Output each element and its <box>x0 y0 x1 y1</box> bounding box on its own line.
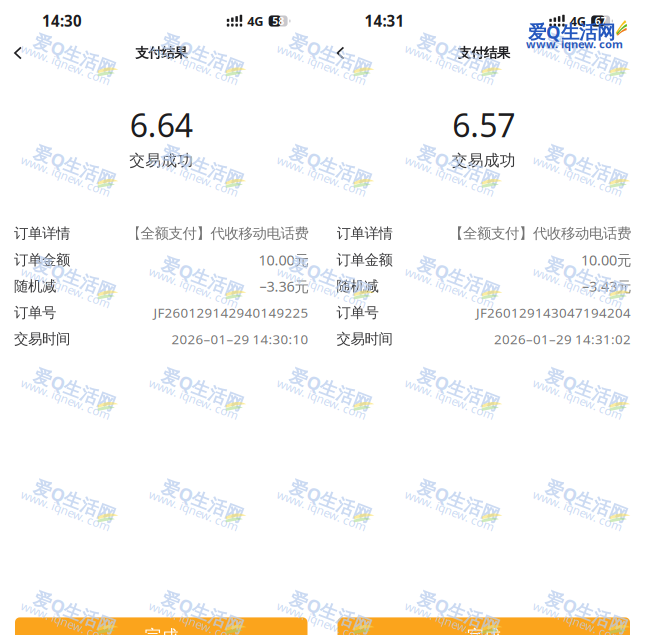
staticText: www. iqnew. com <box>413 602 508 618</box>
staticText: www. iqnew. com <box>413 379 508 395</box>
staticText: 爱Q生活网 <box>551 585 637 610</box>
staticText: 爱Q生活网 <box>423 362 509 387</box>
staticText: 爱Q生活网 <box>295 474 381 498</box>
staticText: 爱Q生活网 <box>423 28 509 52</box>
staticText: 完成 <box>144 625 178 635</box>
staticText: www. iqnew. com <box>285 379 380 395</box>
staticText: www. iqnew. com <box>541 44 636 60</box>
staticText: 【全额支付】代收移动电话费 <box>449 224 631 243</box>
staticText: 爱Q生活网 <box>423 139 509 164</box>
staticText: 支付结果 <box>135 44 187 61</box>
staticText: www. iqnew. com <box>541 156 636 172</box>
staticText: 订单金额 <box>14 251 70 269</box>
staticText: 爱Q生活网 <box>167 474 253 498</box>
staticText: 爱Q生活网 <box>551 251 637 275</box>
staticText: www. iqnew. com <box>285 156 380 172</box>
staticText: 爱Q生活网 <box>39 251 125 275</box>
staticText: 67 <box>595 14 607 28</box>
staticText: 爱Q生活网 <box>551 362 637 387</box>
staticText: 订单号 <box>336 304 378 322</box>
staticText: www. iqnew. com <box>157 490 252 506</box>
staticText: 6.64 <box>130 103 193 147</box>
staticText: 10.00元 <box>581 250 631 270</box>
staticText: www. iqnew. com <box>157 156 252 172</box>
staticText: 爱Q生活网 <box>295 139 381 164</box>
staticText: www. iqnew. com <box>285 602 380 618</box>
staticText: 交易时间 <box>336 330 392 348</box>
staticText: 爱Q生活网 <box>167 362 253 387</box>
staticText: www. iqnew. com <box>413 156 508 172</box>
staticText: www. iqnew. com <box>541 379 636 395</box>
staticText: 爱Q生活网 <box>423 474 509 498</box>
staticText: 14:31 <box>364 11 404 31</box>
staticText: www. iqnew. com <box>413 267 508 283</box>
staticText: 订单金额 <box>336 251 392 269</box>
staticText: 爱Q生活网 <box>295 585 381 610</box>
staticText: 4G <box>570 12 586 30</box>
staticText: JF260129142940149225 <box>153 303 308 322</box>
staticText: 爱Q生活网 <box>295 362 381 387</box>
staticText: 爱Q生活网 <box>167 139 253 164</box>
staticText: 2026–01–29 14:31:02 <box>494 330 631 348</box>
staticText: www. iqnew. com <box>157 44 252 60</box>
staticText: 爱Q生活网 <box>39 585 125 610</box>
staticText: www. iqnew. com <box>413 44 508 60</box>
staticText: 58 <box>272 14 284 28</box>
staticText: www. iqnew. com <box>29 156 124 172</box>
staticText: 爱Q生活网 <box>39 139 125 164</box>
staticText: www. iqnew. com <box>157 602 252 618</box>
staticText: 爱Q生活网 <box>528 19 615 44</box>
staticText: JF260129143047194204 <box>476 303 631 322</box>
staticText: 爱Q生活网 <box>295 251 381 275</box>
staticText: 爱Q生活网 <box>167 28 253 52</box>
staticText: www. iqnew. com <box>29 490 124 506</box>
staticText: www. iqnew. com <box>157 379 252 395</box>
staticText: 4G <box>247 12 263 30</box>
staticText: www. iqnew. com <box>157 267 252 283</box>
staticText: 交易成功 <box>452 151 516 170</box>
staticText: www. iqnew. com <box>285 267 380 283</box>
staticText: www. iqnew. com <box>285 490 380 506</box>
staticText: www. iqnew. com <box>541 490 636 506</box>
staticText: www. iqnew. com <box>29 44 124 60</box>
staticText: www. iqnew. com <box>541 602 636 618</box>
staticText: 爱Q生活网 <box>551 28 637 52</box>
button[interactable]: 完成 <box>0 617 322 635</box>
staticText: 随机减 <box>336 277 378 295</box>
staticText: www. iqnew. com <box>526 36 623 52</box>
staticText: 爱Q生活网 <box>551 139 637 164</box>
staticText: 订单号 <box>14 304 56 322</box>
staticText: –3.43元 <box>582 276 631 296</box>
staticText: www. iqnew. com <box>413 490 508 506</box>
staticText: 完成 <box>467 625 501 635</box>
staticText: 爱Q生活网 <box>423 251 509 275</box>
staticText: www. iqnew. com <box>285 44 380 60</box>
staticText: 爱Q生活网 <box>551 474 637 498</box>
button[interactable]: 返回 <box>322 37 370 69</box>
staticText: 爱Q生活网 <box>39 28 125 52</box>
button[interactable]: 返回 <box>0 37 48 69</box>
staticText: 爱Q生活网 <box>295 28 381 52</box>
staticText: 【全额支付】代收移动电话费 <box>126 224 308 243</box>
staticText: 订单详情 <box>336 224 392 243</box>
staticText: 支付结果 <box>458 44 510 61</box>
staticText: –3.36元 <box>259 276 308 296</box>
staticText: www. iqnew. com <box>29 602 124 618</box>
staticText: 交易成功 <box>129 151 193 170</box>
staticText: 爱Q生活网 <box>167 585 253 610</box>
staticText: 订单详情 <box>14 224 70 243</box>
staticText: www. iqnew. com <box>29 379 124 395</box>
staticText: 随机减 <box>14 277 56 295</box>
staticText: www. iqnew. com <box>541 267 636 283</box>
staticText: 10.00元 <box>258 250 308 270</box>
button[interactable]: 完成 <box>322 617 645 635</box>
staticText: 爱Q生活网 <box>423 585 509 610</box>
staticText: 6.57 <box>452 103 515 147</box>
staticText: 14:30 <box>42 11 82 31</box>
staticText: 交易时间 <box>14 330 70 348</box>
staticText: 爱Q生活网 <box>39 474 125 498</box>
staticText: www. iqnew. com <box>29 267 124 283</box>
staticText: 2026–01–29 14:30:10 <box>171 330 308 348</box>
staticText: 爱Q生活网 <box>39 362 125 387</box>
staticText: 爱Q生活网 <box>167 251 253 275</box>
